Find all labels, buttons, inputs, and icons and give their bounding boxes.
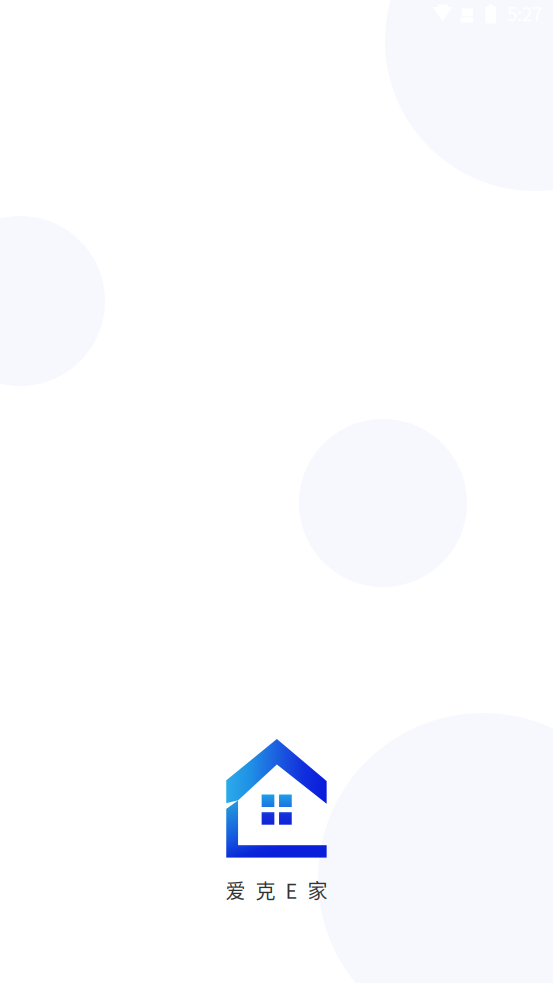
staticText: 家 <box>307 876 327 905</box>
staticText: 克 <box>255 876 275 905</box>
staticText: 爱 <box>225 876 245 905</box>
staticText: E <box>285 876 297 905</box>
